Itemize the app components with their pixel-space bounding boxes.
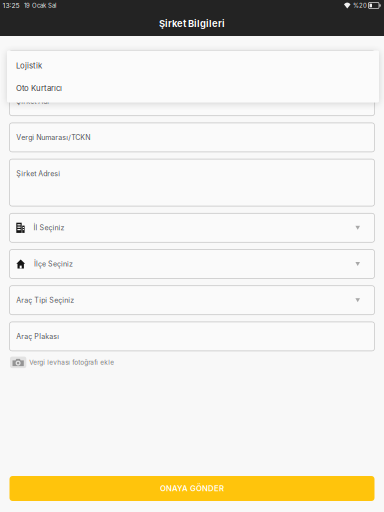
staticText: 13:25: [2, 1, 19, 10]
staticText: Vergi Numarası/TCKN: [16, 133, 90, 142]
staticText: 19 Ocak Sal: [24, 2, 56, 9]
button[interactable]: Şirket Adı: [9, 87, 374, 116]
staticText: Araç Plakası: [16, 332, 59, 341]
button[interactable]: Şirket Adresi: [9, 159, 374, 206]
staticText: Şirket Adresi: [16, 169, 60, 178]
button[interactable]: Araç Plakası: [9, 322, 374, 351]
staticText: ONAYA GÖNDER: [160, 484, 224, 493]
button[interactable]: İlçe Seçiniz: [9, 249, 374, 278]
staticText: Şirket Adı: [16, 97, 49, 105]
staticText: İl Seçiniz: [33, 223, 64, 232]
staticText: Hizmet Türü Seçiniz: [16, 61, 83, 69]
staticText: Vergi levhası fotoğrafı ekle: [29, 358, 114, 366]
staticText: %20: [353, 2, 367, 9]
button[interactable]: Araç Tipi Seçiniz: [9, 286, 374, 315]
button[interactable]: Vergi Numarası/TCKN: [9, 123, 374, 152]
button[interactable]: Lojistik: [7, 54, 379, 77]
staticText: Şirket Bilgileri: [159, 18, 225, 29]
staticText: Araç Tipi Seçiniz: [16, 296, 74, 304]
button[interactable]: İl Seçiniz: [9, 213, 374, 242]
staticText: İlçe Seçiniz: [34, 260, 73, 268]
button[interactable]: Hizmet Türü Seçiniz: [9, 50, 374, 79]
button[interactable]: Oto Kurtarıcı: [7, 77, 379, 99]
button[interactable]: ONAYA GÖNDER: [9, 476, 374, 501]
button[interactable]: Vergi levhası fotoğrafı ekle: [9, 357, 374, 368]
staticText: Lojistik: [16, 61, 42, 70]
staticText: Oto Kurtarıcı: [16, 84, 62, 93]
